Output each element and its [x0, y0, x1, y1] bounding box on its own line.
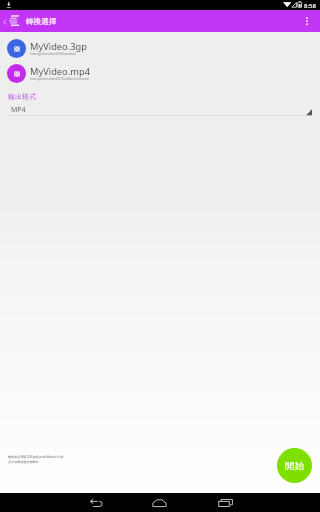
staticText: 文件在轉換後自動刪除 [8, 460, 39, 464]
button[interactable]: Home [145, 494, 174, 511]
button[interactable]: MyVideo.mp4 [0, 64, 320, 83]
button[interactable]: More options [300, 13, 314, 29]
button[interactable]: Back [0, 15, 9, 28]
staticText: 8:58 [304, 2, 316, 10]
button[interactable]: Back [81, 494, 110, 511]
staticText: 輸出格式 [8, 92, 36, 101]
staticText: MP4 [11, 105, 26, 114]
staticText: /storage/emulated/0/TheVideoConverter [30, 77, 90, 81]
staticText: /storage/emulated/0/Download [30, 52, 77, 56]
button[interactable]: 開始 [277, 448, 312, 483]
staticText: MyVideo.3gp [30, 40, 87, 53]
staticText: 轉換選擇 [26, 17, 57, 27]
staticText: MyVideo.mp4 [30, 65, 90, 78]
button[interactable]: Recents [211, 494, 240, 511]
staticText: 轉換將在SHA-256加密雲端伺服器中完成 [8, 455, 64, 459]
staticText: 開始 [285, 460, 304, 472]
button[interactable]: MP4 [0, 102, 320, 120]
button[interactable]: MyVideo.3gp [0, 39, 320, 58]
